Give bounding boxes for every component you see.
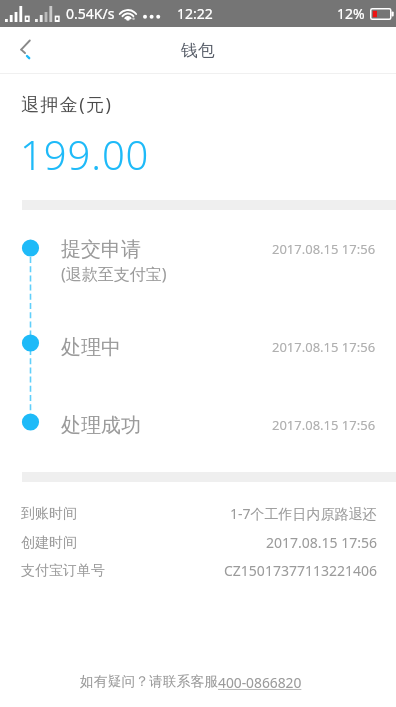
button[interactable]: 400-0866820: [218, 673, 302, 692]
button[interactable]: 提交申请: [0, 229, 396, 299]
staticText: 到账时间: [21, 505, 77, 523]
staticText: 处理中: [61, 335, 121, 360]
staticText: 提交申请: [61, 237, 141, 262]
button[interactable]: 创建时间: [0, 526, 396, 555]
button[interactable]: 支付宝订单号: [0, 554, 396, 583]
button[interactable]: 处理中: [0, 327, 396, 383]
staticText: 2017.08.15 17:56: [272, 338, 376, 356]
button[interactable]: 到账时间: [0, 497, 396, 526]
staticText: 创建时间: [21, 534, 77, 552]
button[interactable]: Back: [0, 27, 48, 74]
staticText: 1-7个工作日内原路退还: [230, 504, 377, 523]
staticText: 0.54K/s: [66, 4, 115, 23]
staticText: 支付宝订单号: [21, 562, 105, 580]
staticText: CZ15017377113221406: [224, 561, 377, 580]
staticText: (退款至支付宝): [61, 263, 167, 285]
staticText: 199.00: [20, 127, 150, 181]
button[interactable]: 处理成功: [0, 405, 396, 453]
staticText: 退押金(元): [21, 92, 113, 117]
staticText: 钱包: [181, 40, 215, 61]
staticText: 处理成功: [61, 413, 141, 438]
staticText: 12%: [337, 4, 365, 23]
staticText: 12:22: [177, 4, 213, 23]
staticText: 2017.08.15 17:56: [272, 416, 376, 434]
staticText: 2017.08.15 17:56: [266, 533, 377, 552]
staticText: 如有疑问？请联系客服: [80, 673, 218, 690]
staticText: 2017.08.15 17:56: [272, 240, 376, 258]
